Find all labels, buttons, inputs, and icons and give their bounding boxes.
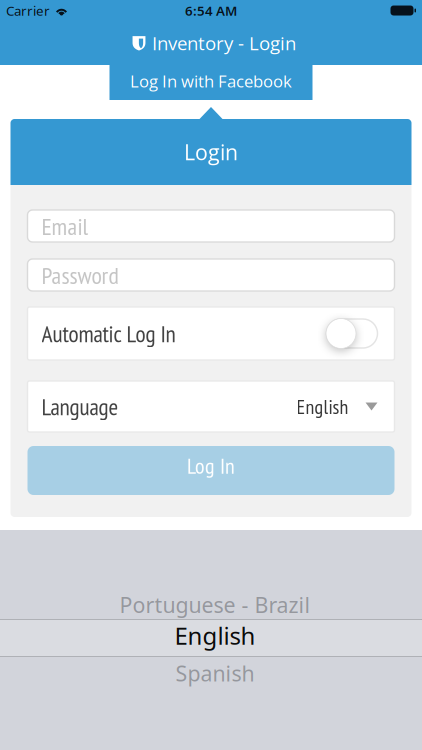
staticText: Email bbox=[41, 210, 88, 242]
staticText: 6:54 AM bbox=[185, 2, 237, 19]
staticText: Carrier bbox=[6, 2, 50, 19]
staticText: Login bbox=[184, 137, 238, 167]
button[interactable]: Automatic Log In bbox=[326, 318, 377, 348]
button[interactable]: English bbox=[170, 622, 251, 654]
staticText: Log In bbox=[187, 451, 235, 480]
staticText: Inventory - Login bbox=[152, 30, 296, 56]
staticText: English bbox=[296, 394, 348, 419]
staticText: Portuguese - Brazil bbox=[119, 591, 310, 619]
staticText: English bbox=[174, 620, 255, 651]
button[interactable]: Portuguese - Brazil bbox=[115, 591, 306, 619]
staticText: Language bbox=[41, 391, 118, 422]
button[interactable]: Language bbox=[27, 381, 394, 432]
button[interactable]: Log In bbox=[27, 446, 394, 495]
staticText: Password bbox=[41, 259, 118, 291]
staticText: Spanish bbox=[175, 659, 254, 687]
staticText: Automatic Log In bbox=[41, 318, 175, 349]
button[interactable]: Log In with Facebook bbox=[109, 65, 312, 100]
staticText: Log In with Facebook bbox=[130, 70, 292, 92]
button[interactable]: Spanish bbox=[171, 659, 250, 687]
